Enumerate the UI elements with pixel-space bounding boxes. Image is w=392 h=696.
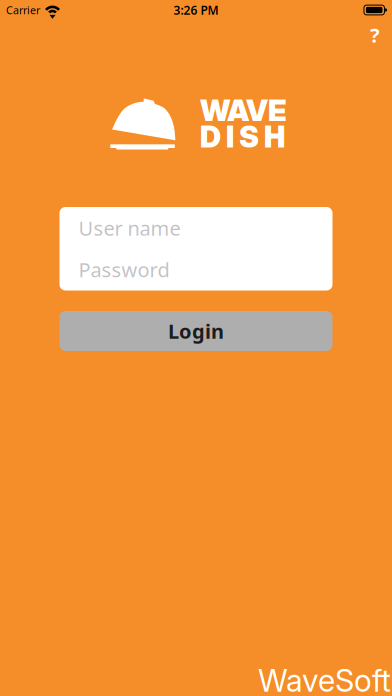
staticText: User name [78,215,180,241]
button[interactable]: Help [360,22,390,48]
staticText: Carrier [6,3,40,17]
button[interactable]: Login [59,311,332,351]
staticText: DISH [200,119,285,154]
staticText: Login [168,318,224,344]
staticText: Password [78,256,169,283]
staticText: 3:26 PM [173,2,218,18]
staticText: ? [370,22,380,48]
staticText: WaveSoft [258,662,391,696]
staticText: WAVE [200,93,287,128]
